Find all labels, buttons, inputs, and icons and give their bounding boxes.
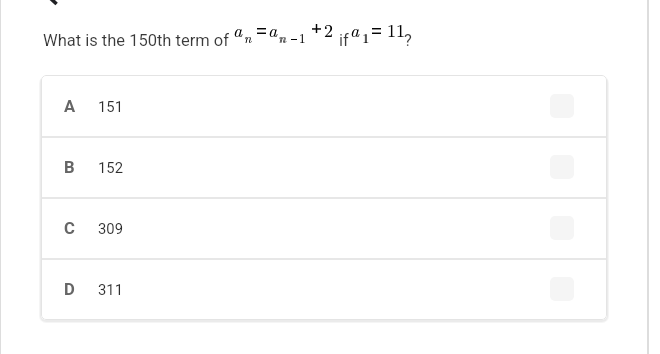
staticText: a	[268, 17, 278, 42]
staticText: 1	[299, 28, 306, 46]
staticText: a	[350, 17, 360, 42]
button[interactable]	[41, 75, 607, 136]
staticText: B	[64, 158, 75, 177]
staticText: 1	[362, 28, 369, 46]
staticText: 1	[363, 28, 370, 46]
staticText: n	[278, 28, 286, 46]
staticText: a	[350, 17, 360, 42]
staticText: 151	[98, 98, 123, 115]
staticText: n	[279, 28, 287, 46]
staticText: 311	[98, 281, 123, 298]
staticText: A	[64, 97, 76, 116]
staticText: 2	[324, 17, 333, 43]
staticText: C	[64, 219, 75, 238]
staticText: a	[233, 17, 243, 42]
staticText: 11	[387, 17, 405, 43]
staticText: 1	[299, 28, 306, 46]
staticText: ?	[404, 31, 412, 50]
staticText: a	[233, 17, 243, 42]
staticText: n	[244, 28, 252, 46]
button[interactable]	[41, 197, 607, 258]
staticText: 11	[387, 17, 405, 43]
staticText: What is the 150th term of	[43, 31, 229, 50]
staticText: n	[244, 28, 252, 46]
staticText: 309	[98, 220, 123, 237]
button[interactable]	[41, 136, 607, 197]
staticText: if	[339, 31, 349, 50]
staticText: 2	[324, 17, 333, 43]
staticText: a	[268, 17, 278, 42]
staticText: 152	[98, 159, 123, 176]
button[interactable]	[41, 259, 607, 321]
staticText: D	[64, 280, 75, 299]
